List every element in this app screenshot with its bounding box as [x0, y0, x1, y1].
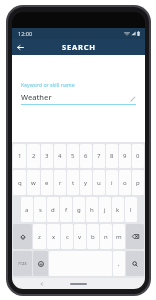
button[interactable]: w — [27, 170, 40, 195]
button[interactable]: 2 — [27, 144, 40, 168]
button[interactable]: Search — [126, 251, 144, 276]
staticText: v — [78, 233, 82, 241]
button[interactable]: k — [112, 197, 124, 222]
staticText: p — [136, 179, 140, 187]
staticText: h — [90, 206, 94, 214]
staticText: f — [65, 206, 68, 214]
button[interactable]: x — [47, 224, 60, 249]
button[interactable]: e — [41, 170, 53, 195]
staticText: c — [66, 233, 69, 241]
staticText: 0 — [136, 152, 140, 160]
button[interactable]: Back — [38, 280, 45, 287]
staticText: z — [38, 233, 41, 241]
staticText: ?123 — [18, 261, 27, 266]
button[interactable]: z — [33, 224, 46, 249]
staticText: m — [116, 233, 122, 241]
button[interactable]: 8 — [106, 144, 118, 168]
button[interactable]: , — [113, 251, 125, 276]
button[interactable]: 6 — [80, 144, 92, 168]
button[interactable]: s — [34, 197, 46, 222]
button[interactable]: c — [61, 224, 73, 249]
button[interactable]: t — [67, 170, 79, 195]
button[interactable]: i — [106, 170, 118, 195]
button[interactable]: Home — [70, 283, 87, 285]
staticText: SEARCH — [62, 42, 96, 52]
button[interactable]: j — [99, 197, 111, 222]
button[interactable]: r — [54, 170, 66, 195]
staticText: y — [84, 179, 88, 187]
button[interactable]: Back — [14, 41, 26, 53]
button[interactable]: b — [87, 224, 99, 249]
staticText: Keyword or skill name — [21, 81, 75, 88]
button[interactable]: 1 — [13, 144, 26, 168]
staticText: q — [18, 179, 22, 187]
staticText: e — [45, 179, 49, 187]
staticText: t — [72, 179, 75, 187]
staticText: x — [52, 233, 56, 241]
button[interactable]: 3 — [41, 144, 53, 168]
staticText: g — [77, 206, 81, 214]
button[interactable]: g — [73, 197, 85, 222]
button[interactable]: Emoji — [33, 251, 48, 276]
button[interactable]: 9 — [119, 144, 131, 168]
staticText: 4 — [58, 152, 62, 160]
button[interactable]: y — [80, 170, 92, 195]
staticText: 8 — [110, 152, 114, 160]
staticText: k — [116, 206, 120, 214]
button[interactable]: m — [113, 224, 125, 249]
staticText: s — [39, 206, 42, 214]
staticText: 5 — [71, 152, 75, 160]
button[interactable]: f — [60, 197, 72, 222]
staticText: b — [91, 233, 95, 241]
staticText: 7 — [97, 152, 101, 160]
button[interactable]: l — [125, 197, 137, 222]
button[interactable]: n — [100, 224, 112, 249]
button[interactable]: d — [47, 197, 59, 222]
staticText: r — [59, 179, 62, 187]
button[interactable]: h — [86, 197, 98, 222]
button[interactable]: 7 — [93, 144, 105, 168]
button[interactable]: Symbols — [13, 251, 32, 276]
staticText: 6 — [84, 152, 88, 160]
staticText: a — [25, 206, 29, 214]
staticText: l — [130, 206, 132, 214]
button[interactable]: q — [13, 170, 26, 195]
staticText: d — [51, 206, 55, 214]
button[interactable]: 0 — [132, 144, 144, 168]
staticText: j — [104, 206, 106, 214]
button[interactable]: 5 — [67, 144, 79, 168]
staticText: 12:00 — [18, 30, 33, 37]
staticText: o — [123, 179, 127, 187]
staticText: 1 — [18, 152, 22, 160]
button[interactable]: Shift — [13, 224, 32, 249]
button[interactable]: a — [21, 197, 33, 222]
button[interactable]: v — [74, 224, 86, 249]
staticText: u — [97, 179, 101, 187]
button[interactable]: u — [93, 170, 105, 195]
staticText: , — [118, 260, 120, 268]
staticText: n — [104, 233, 108, 241]
staticText: w — [31, 179, 36, 187]
other: Edit — [129, 95, 136, 102]
button[interactable]: Backspace — [126, 224, 144, 249]
button[interactable]: o — [119, 170, 131, 195]
button[interactable]: 4 — [54, 144, 66, 168]
staticText: 3 — [45, 152, 49, 160]
staticText: 2 — [32, 152, 36, 160]
staticText: i — [111, 179, 113, 187]
button[interactable]: p — [132, 170, 144, 195]
button[interactable]: Keyword or skill name — [21, 81, 136, 105]
staticText: 9 — [123, 152, 127, 160]
staticText: Weather — [21, 92, 129, 102]
